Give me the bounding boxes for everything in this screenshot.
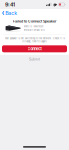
staticText: Failed to Connect Speaker: [13, 19, 56, 23]
staticText: Device ID: 0886736281: [23, 25, 43, 28]
button[interactable]: Submit: [25, 55, 44, 62]
button[interactable]: Connect: [2, 45, 67, 52]
staticText: Submit: [29, 57, 40, 61]
button[interactable]: Back: [0, 8, 17, 18]
staticText: 9:41: [5, 1, 15, 8]
staticText: Your speaker is not switching to the net…: [4, 37, 64, 43]
staticText: Firmware version 4.1.13: [23, 29, 44, 31]
staticText: Back: [5, 10, 17, 16]
staticText: Connect: [27, 46, 41, 51]
